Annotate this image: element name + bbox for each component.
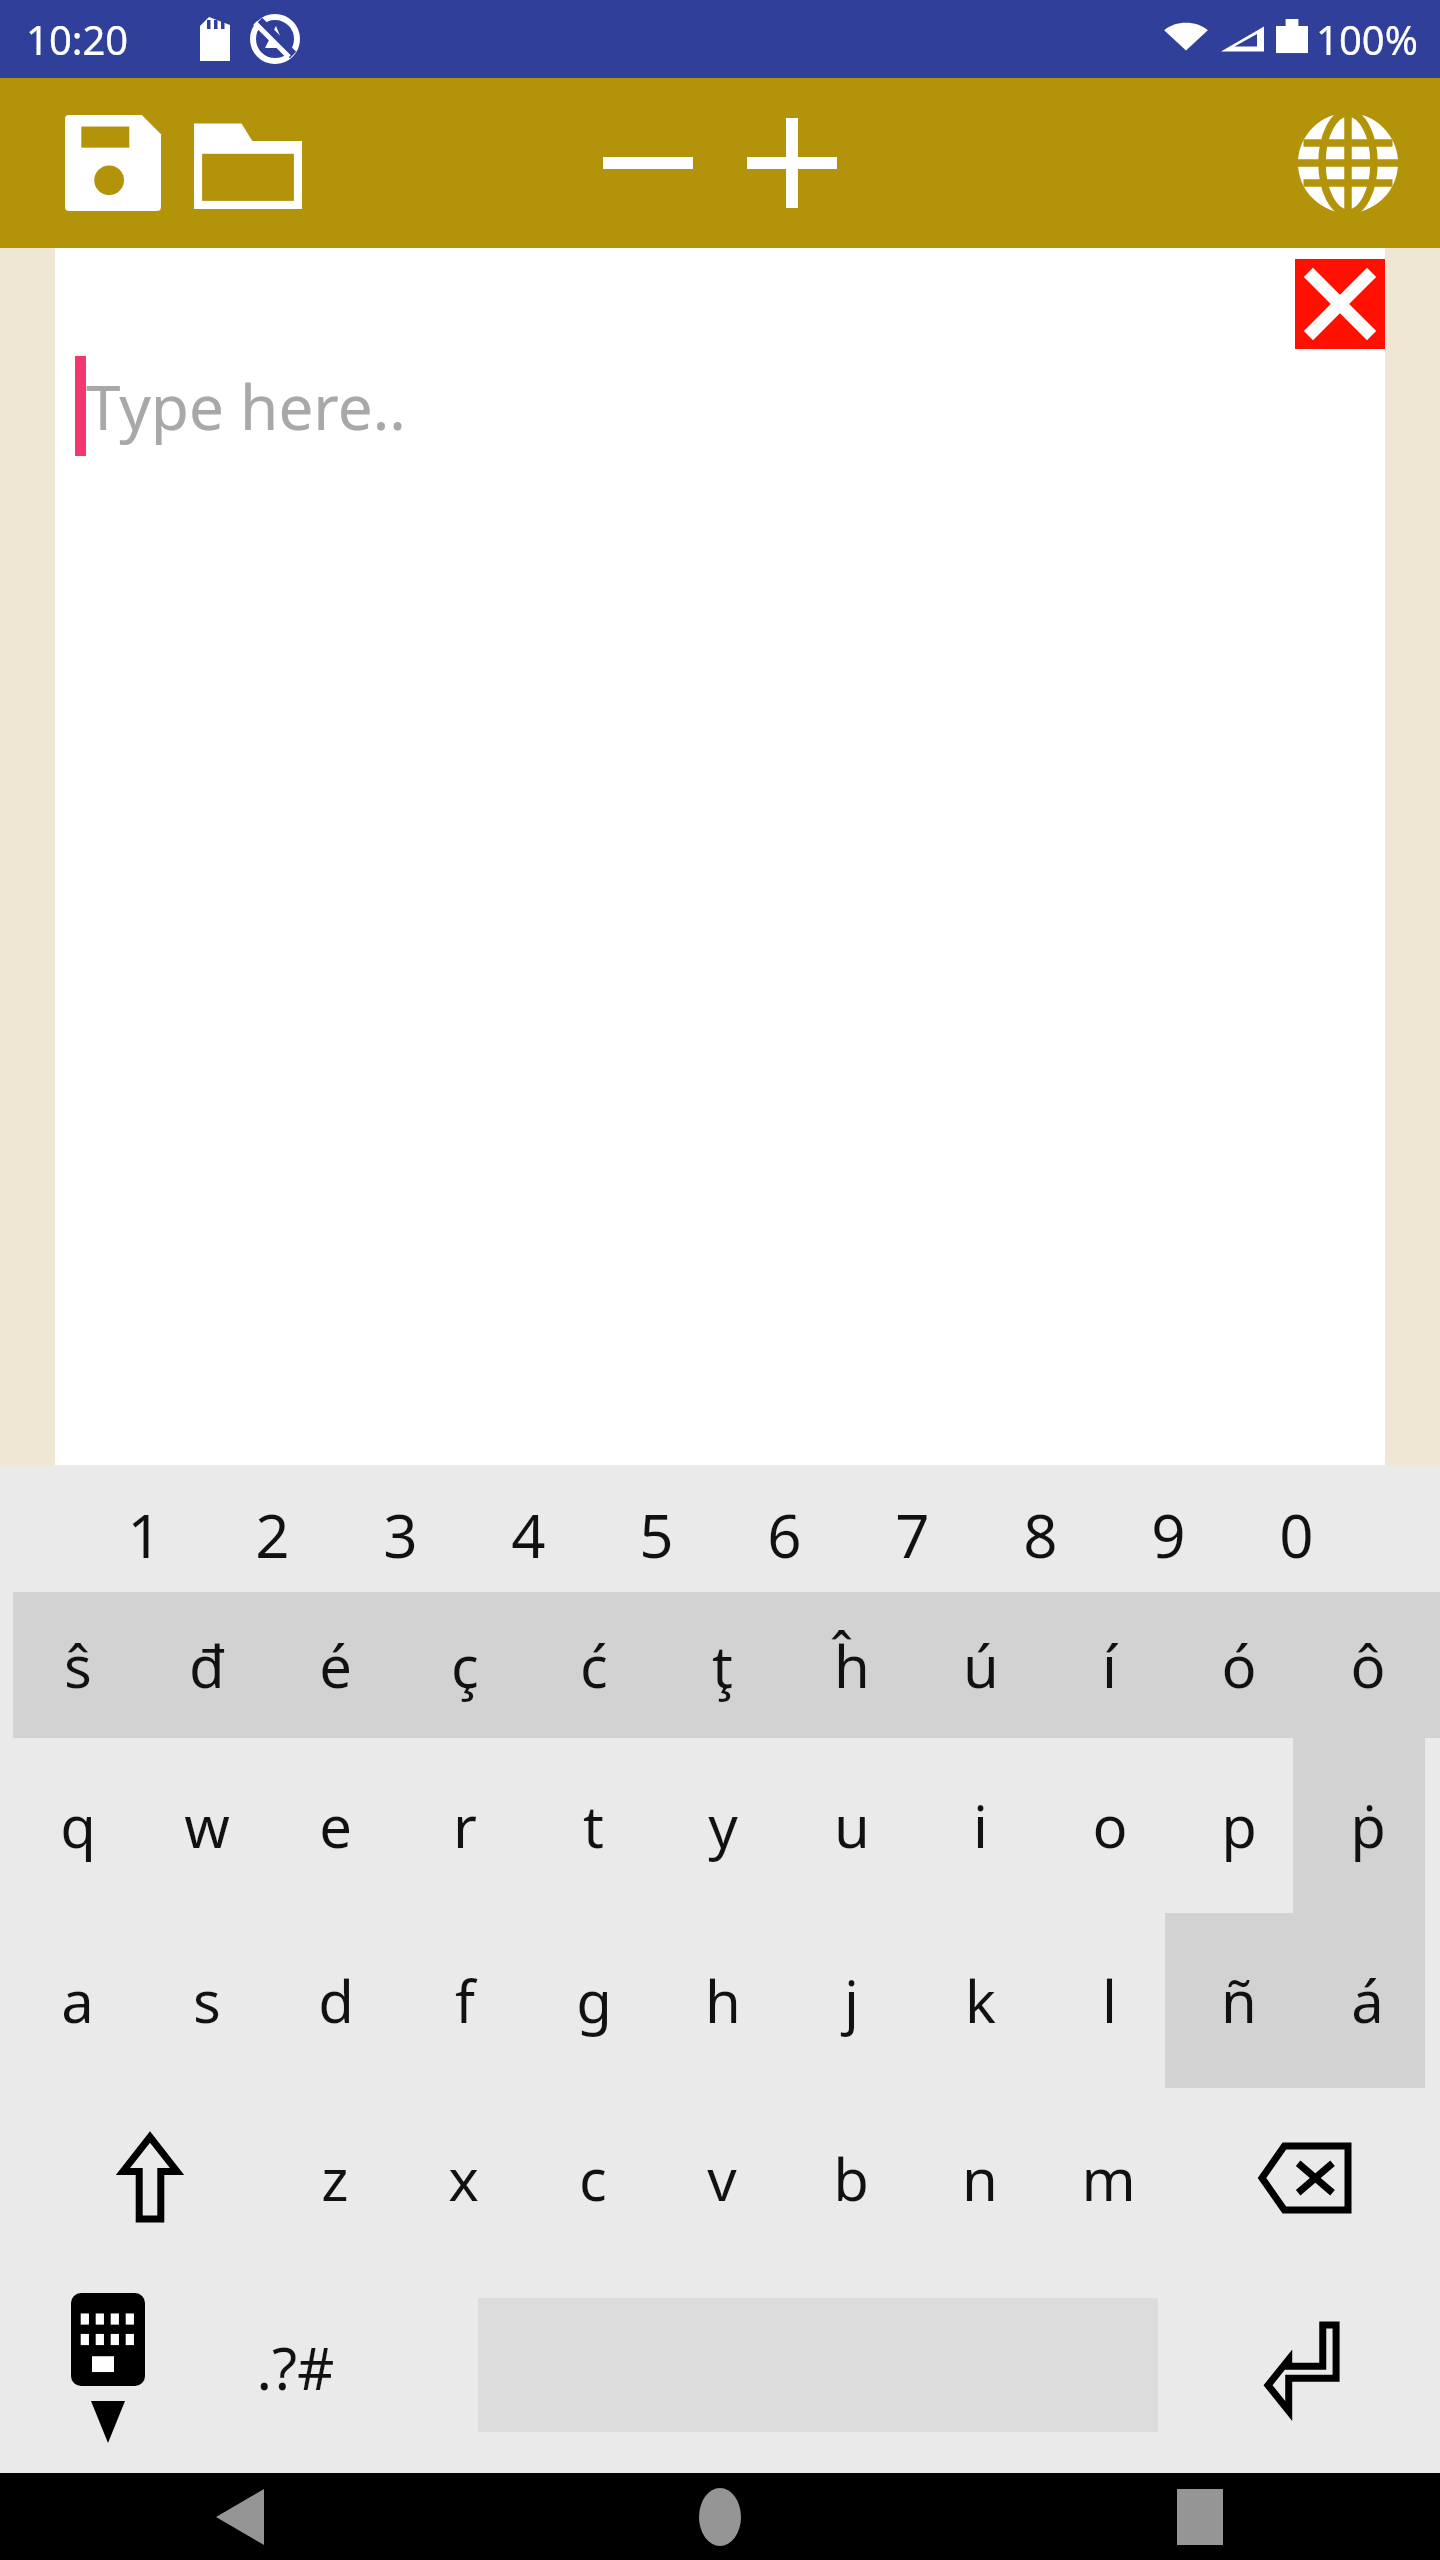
staticText: j	[844, 1961, 859, 2040]
staticText: a	[61, 1961, 94, 2040]
button[interactable]: é	[271, 1592, 400, 1738]
staticText: o	[1092, 1786, 1128, 1865]
button[interactable]: t	[529, 1738, 658, 1913]
staticText: đ	[189, 1626, 225, 1705]
button[interactable]: 0	[1232, 1475, 1360, 1595]
button[interactable]: Back	[0, 2473, 480, 2560]
staticText: 2	[255, 1494, 290, 1576]
button[interactable]: 4	[464, 1475, 592, 1595]
staticText: b	[833, 2139, 869, 2218]
button[interactable]: i	[916, 1738, 1045, 1913]
staticText: ú	[963, 1626, 999, 1705]
button[interactable]: Home	[480, 2473, 960, 2560]
button[interactable]: ñ	[1174, 1913, 1303, 2088]
button[interactable]: 6	[720, 1475, 848, 1595]
staticText: ć	[580, 1626, 608, 1705]
button[interactable]: Recents	[960, 2473, 1440, 2560]
button[interactable]: 3	[336, 1475, 464, 1595]
button[interactable]: p	[1174, 1738, 1303, 1913]
button[interactable]: x	[399, 2088, 528, 2268]
staticText: e	[319, 1786, 352, 1865]
button[interactable]: Enter	[1230, 2270, 1380, 2465]
button[interactable]: đ	[142, 1592, 271, 1738]
button[interactable]: 7	[848, 1475, 976, 1595]
button[interactable]: o	[1045, 1738, 1174, 1913]
button[interactable]: ç	[400, 1592, 529, 1738]
button[interactable]: Decrease text size	[593, 108, 703, 218]
staticText: 8	[1023, 1494, 1058, 1576]
button[interactable]: r	[400, 1738, 529, 1913]
staticText: ĥ	[834, 1626, 870, 1705]
button[interactable]: d	[271, 1913, 400, 2088]
button[interactable]: m	[1044, 2088, 1173, 2268]
staticText: q	[60, 1786, 96, 1865]
button[interactable]: Backspace	[1230, 2088, 1380, 2268]
button[interactable]: y	[658, 1738, 787, 1913]
button[interactable]: 2	[208, 1475, 336, 1595]
staticText: t	[583, 1786, 604, 1865]
button[interactable]: ţ	[658, 1592, 787, 1738]
button[interactable]: á	[1303, 1913, 1432, 2088]
button[interactable]: l	[1045, 1913, 1174, 2088]
button[interactable]: Hide keyboard	[38, 2270, 178, 2465]
button[interactable]: e	[271, 1738, 400, 1913]
button[interactable]: Shift	[80, 2088, 220, 2268]
staticText: y	[708, 1786, 738, 1865]
button[interactable]: q	[13, 1738, 142, 1913]
button[interactable]: .?#	[215, 2270, 375, 2465]
staticText: u	[834, 1786, 870, 1865]
button[interactable]: j	[787, 1913, 916, 2088]
staticText: v	[707, 2139, 737, 2218]
button[interactable]: Close	[1295, 259, 1385, 349]
button[interactable]: ó	[1174, 1592, 1303, 1738]
staticText: á	[1351, 1961, 1384, 2040]
staticText: r	[453, 1786, 477, 1865]
button[interactable]: Type here..	[55, 248, 1385, 1465]
button[interactable]: Open	[188, 103, 308, 223]
staticText: x	[448, 2139, 479, 2218]
button[interactable]: 8	[976, 1475, 1104, 1595]
staticText: ç	[451, 1626, 479, 1705]
button[interactable]: a	[13, 1913, 142, 2088]
button[interactable]: 5	[592, 1475, 720, 1595]
button[interactable]: ú	[916, 1592, 1045, 1738]
staticText: ṗ	[1350, 1786, 1386, 1865]
staticText: h	[705, 1961, 741, 2040]
button[interactable]: ô	[1303, 1592, 1432, 1738]
button[interactable]: u	[787, 1738, 916, 1913]
staticText: .?#	[256, 2328, 335, 2407]
button[interactable]: k	[916, 1913, 1045, 2088]
staticText: 5	[639, 1494, 674, 1576]
button[interactable]: c	[528, 2088, 657, 2268]
button[interactable]: ŝ	[13, 1592, 142, 1738]
button[interactable]: ć	[529, 1592, 658, 1738]
button[interactable]: 1	[80, 1475, 208, 1595]
staticText: 1	[127, 1494, 162, 1576]
button[interactable]: n	[915, 2088, 1044, 2268]
staticText: 3	[383, 1494, 418, 1576]
button[interactable]: Language	[1288, 103, 1408, 223]
button[interactable]: f	[400, 1913, 529, 2088]
staticText: 4	[511, 1494, 546, 1576]
staticText: ñ	[1221, 1961, 1257, 2040]
staticText: m	[1081, 2139, 1136, 2218]
button[interactable]: ṗ	[1303, 1738, 1432, 1913]
button[interactable]: Save	[58, 108, 168, 218]
button[interactable]: ĥ	[787, 1592, 916, 1738]
button[interactable]: b	[786, 2088, 915, 2268]
button[interactable]: Increase text size	[737, 108, 847, 218]
button[interactable]: í	[1045, 1592, 1174, 1738]
button[interactable]: h	[658, 1913, 787, 2088]
button[interactable]: v	[657, 2088, 786, 2268]
button[interactable]: s	[142, 1913, 271, 2088]
staticText: 10:20	[26, 12, 129, 66]
staticText: Type here..	[86, 364, 406, 448]
button[interactable]: 9	[1104, 1475, 1232, 1595]
staticText: i	[973, 1786, 988, 1865]
staticText: s	[193, 1961, 221, 2040]
button[interactable]: w	[142, 1738, 271, 1913]
staticText: g	[576, 1961, 612, 2040]
button[interactable]: g	[529, 1913, 658, 2088]
button[interactable]: z	[270, 2088, 399, 2268]
